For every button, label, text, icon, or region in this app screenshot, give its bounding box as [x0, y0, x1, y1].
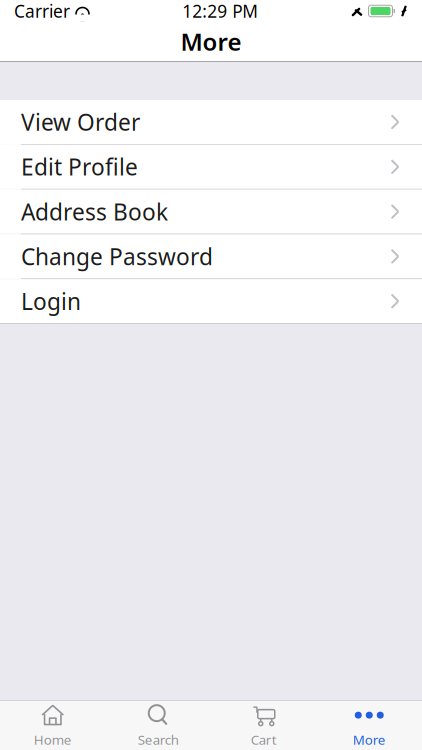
- staticText: Home: [34, 731, 72, 748]
- staticText: Search: [138, 731, 179, 748]
- button[interactable]: View Order: [0, 100, 422, 144]
- staticText: More: [353, 731, 386, 748]
- staticText: Change Password: [21, 241, 213, 271]
- button[interactable]: Edit Profile: [0, 145, 422, 189]
- button[interactable]: Search: [105, 701, 211, 750]
- staticText: More: [180, 26, 241, 57]
- staticText: View Order: [21, 107, 140, 137]
- staticText: Edit Profile: [21, 152, 138, 182]
- staticText: Cart: [251, 731, 277, 748]
- button[interactable]: More: [316, 701, 422, 750]
- button[interactable]: Address Book: [0, 190, 422, 234]
- staticText: Address Book: [21, 196, 168, 227]
- button[interactable]: Home: [0, 701, 105, 750]
- button[interactable]: Login: [0, 279, 422, 323]
- staticText: 12:29 PM: [182, 0, 258, 22]
- button[interactable]: Cart: [211, 701, 316, 750]
- staticText: Login: [21, 286, 81, 316]
- button[interactable]: Change Password: [0, 234, 422, 278]
- staticText: Carrier: [14, 0, 70, 22]
